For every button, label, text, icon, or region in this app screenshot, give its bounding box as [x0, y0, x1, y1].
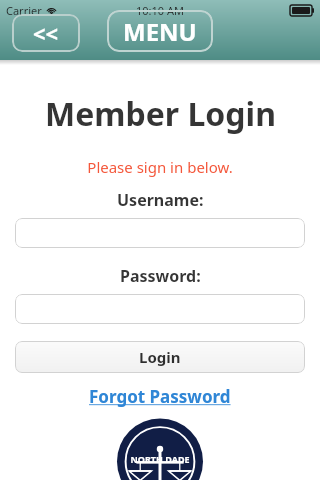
staticText: Password:	[120, 265, 201, 287]
staticText: <<	[33, 18, 59, 48]
button[interactable]: Login	[15, 341, 305, 373]
button[interactable]: Forgot Password	[89, 385, 231, 408]
staticText: Member Login	[45, 92, 276, 136]
staticText: Login	[139, 347, 181, 367]
button[interactable]: <<	[12, 14, 80, 52]
staticText: Forgot Password	[89, 385, 231, 408]
button[interactable]	[15, 294, 305, 324]
staticText: 10:10 AM	[136, 3, 184, 18]
staticText: Please sign in below.	[87, 157, 233, 177]
button[interactable]: MENU	[107, 10, 213, 52]
staticText: MENU	[123, 15, 197, 48]
staticText: NORTH DADE	[130, 453, 190, 465]
staticText: Username:	[117, 189, 204, 211]
staticText: Carrier	[6, 3, 42, 18]
button[interactable]	[15, 218, 305, 248]
